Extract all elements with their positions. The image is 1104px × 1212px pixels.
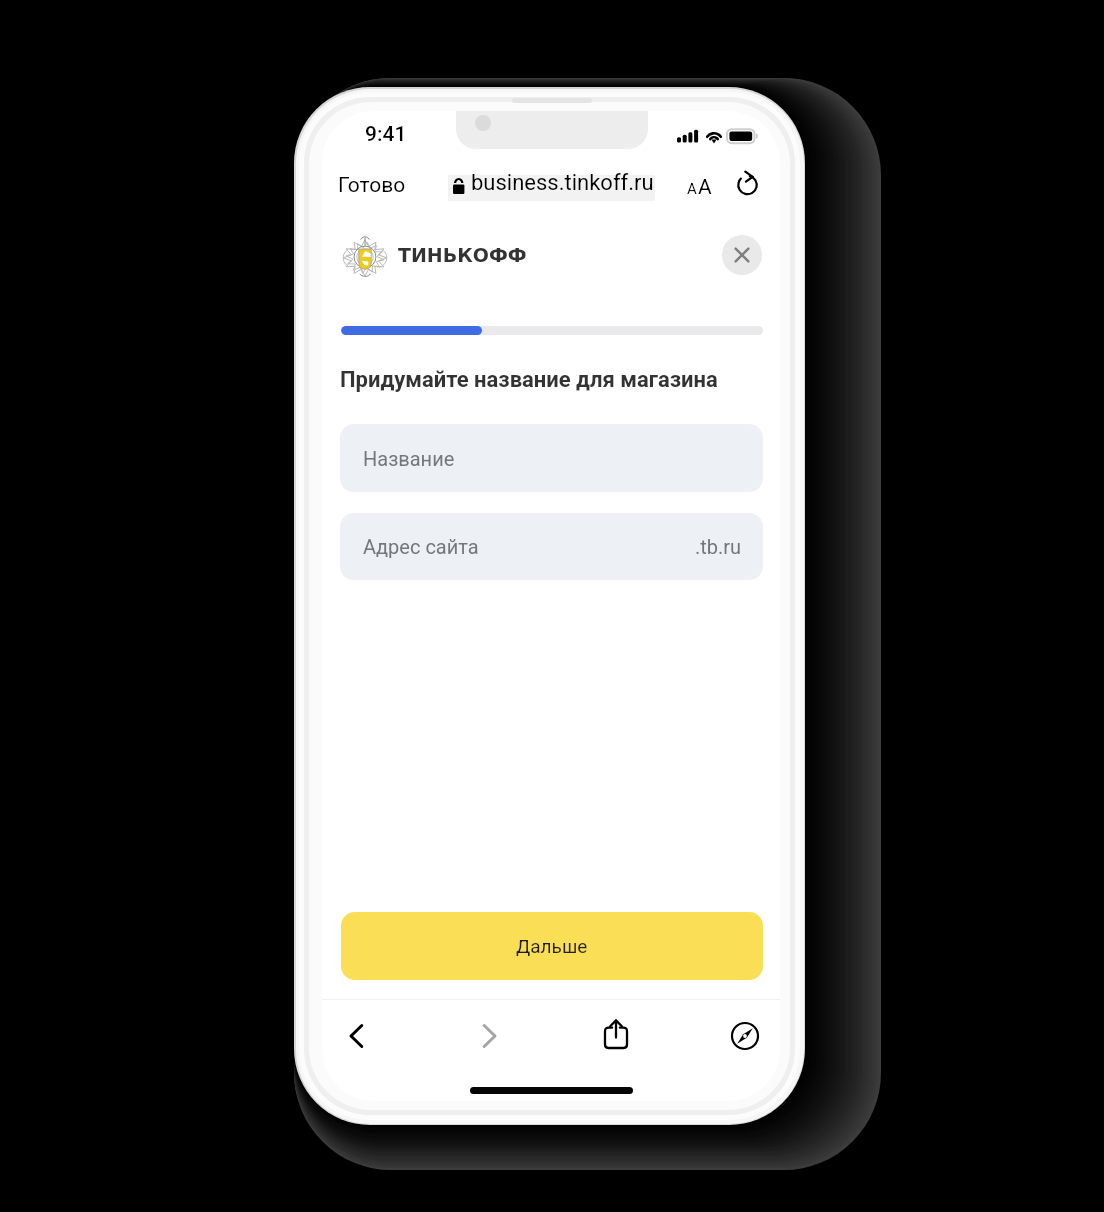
button[interactable]: Reload [726, 161, 770, 207]
staticText: 9:41 [365, 122, 407, 147]
button[interactable] [448, 175, 655, 201]
button[interactable]: Дальше [341, 912, 763, 980]
staticText: Название [363, 447, 455, 470]
staticText: .tb.ru [695, 535, 742, 558]
button[interactable]: Text size [676, 161, 726, 207]
staticText: Придумайте название для магазина [340, 367, 718, 393]
button[interactable]: Bookmarks [723, 1014, 767, 1058]
staticText: ТИНЬКОФФ [398, 244, 527, 266]
button[interactable]: Forward [467, 1014, 511, 1058]
staticText: business.tinkoff.ru [471, 170, 654, 196]
staticText: Адрес сайта [363, 535, 479, 558]
button[interactable]: Готово [330, 163, 414, 207]
button[interactable]: Share [594, 1012, 638, 1056]
staticText: Дальше [516, 935, 588, 957]
button[interactable]: Close [722, 235, 762, 275]
button[interactable]: Название [340, 424, 763, 492]
button[interactable]: Адрес сайта [340, 513, 763, 580]
staticText: Готово [338, 173, 406, 198]
staticText: A [687, 180, 697, 198]
staticText: A [698, 175, 712, 200]
button[interactable]: Back [335, 1014, 379, 1058]
